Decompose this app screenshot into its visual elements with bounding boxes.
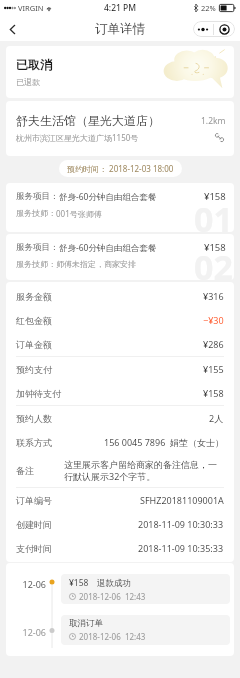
button[interactable]: 创建时间 <box>16 512 224 536</box>
staticText: 2018-12-06 12:43 <box>79 591 146 602</box>
staticText: 杭州市滨江区星光大道广场1150号 <box>16 132 139 143</box>
staticText: ¥286 <box>203 338 224 350</box>
staticText: 001号张师傅 <box>56 208 102 219</box>
button[interactable]: 预约支付 <box>16 357 224 381</box>
staticText: 02 <box>194 244 233 280</box>
staticText: 订单金额 <box>16 339 52 350</box>
button[interactable]: 加钟待支付 <box>16 381 224 405</box>
staticText: ¥155 <box>203 363 224 375</box>
staticText: SFHZ20181109001A <box>140 494 224 506</box>
staticText: −¥30 <box>203 314 224 326</box>
staticText: 备注 <box>16 465 34 476</box>
staticText: 订单编号 <box>16 495 52 506</box>
staticText: 服务项目： <box>16 191 59 202</box>
staticText: 已取消 <box>16 57 52 72</box>
staticText: 服务技师： <box>16 208 56 218</box>
staticText: 加钟待支付 <box>16 388 61 399</box>
staticText: 2人 <box>209 412 224 424</box>
staticText: 服务项目： <box>16 242 59 253</box>
staticText: 4:21 PM <box>104 2 137 14</box>
staticText: 12-06 <box>22 578 46 590</box>
button[interactable]: Back <box>2 19 22 39</box>
staticText: ¥316 <box>203 290 224 302</box>
staticText: ¥158 <box>203 387 224 399</box>
staticText: VIRGIN <box>18 3 44 13</box>
staticText: 舒身-60分钟自由组合套餐 <box>59 242 157 254</box>
staticText: 预约支付 <box>16 364 52 375</box>
staticText: 取消订单 <box>69 618 103 629</box>
staticText: 预约人数 <box>16 413 52 424</box>
button[interactable]: 支付时间 <box>16 536 224 560</box>
staticText: 创建时间 <box>16 519 52 530</box>
button[interactable]: 联系方式 <box>16 430 224 454</box>
staticText: ¥158 <box>204 190 226 203</box>
button[interactable]: 预约人数 <box>16 406 224 430</box>
staticText: 联系方式 <box>16 437 52 448</box>
button[interactable]: Close mini program <box>214 21 235 37</box>
button[interactable]: 订单编号 <box>16 488 224 512</box>
staticText: 这里展示客户留给商家的备注信息，一行默认展示32个字节。 <box>64 459 224 483</box>
button[interactable]: More options <box>193 21 213 37</box>
staticText: 2018-11-09 10:30:33 <box>138 518 224 530</box>
staticText: 红包金额 <box>16 315 52 326</box>
button[interactable]: 红包金额 <box>16 308 224 332</box>
button[interactable]: 订单金额 <box>16 332 224 356</box>
staticText: 支付时间 <box>16 543 52 554</box>
button[interactable]: 预约时间： 2018-12-03 18:00 <box>59 160 182 177</box>
staticText: 师傅未指定，商家安排 <box>56 259 136 269</box>
staticText: 已退款 <box>16 77 40 87</box>
button[interactable]: ¥158 退款成功 <box>61 574 230 604</box>
staticText: 预约时间： 2018-12-03 18:00 <box>67 163 174 174</box>
staticText: 2018-12-06 12:43 <box>79 631 146 642</box>
button[interactable]: 服务金额 <box>16 284 224 308</box>
staticText: 01 <box>194 196 233 232</box>
staticText: 服务技师： <box>16 259 56 269</box>
staticText: 订单详情 <box>95 21 145 37</box>
button[interactable]: 取消订单 <box>61 615 230 645</box>
staticText: 舒夫生活馆（星光大道店） <box>16 113 160 128</box>
staticText: 1.2km <box>201 115 226 127</box>
staticText: ¥158 退款成功 <box>69 577 131 589</box>
staticText: 2018-11-09 10:35:33 <box>138 542 224 554</box>
staticText: 舒身-60分钟自由组合套餐 <box>59 191 157 203</box>
staticText: 12-06 <box>22 626 46 638</box>
staticText: 22% <box>201 3 216 13</box>
staticText: 156 0045 7896 娟茔（女士） <box>104 436 224 448</box>
staticText: ¥158 <box>204 241 226 254</box>
button[interactable]: Call shop <box>213 131 226 144</box>
staticText: 服务金额 <box>16 291 52 302</box>
